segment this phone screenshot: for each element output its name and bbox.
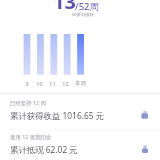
- staticText: 已参与微转: [72, 12, 94, 18]
- staticText: 本周: [75, 80, 86, 87]
- staticText: 使用 12 张抵扣金: [10, 133, 52, 140]
- staticText: 9: [25, 80, 29, 87]
- button[interactable]: 使用 12 张抵扣金: [0, 130, 160, 160]
- staticText: 累计抵现 62.02 元: [10, 144, 78, 155]
- staticText: 累计获得收益 1016.65 元: [10, 110, 105, 121]
- staticText: 10: [36, 80, 43, 87]
- button[interactable]: 已经坚持 12 周: [0, 96, 160, 126]
- staticText: 13: [53, 0, 76, 15]
- staticText: /52周: [75, 0, 100, 13]
- staticText: 11: [49, 80, 56, 87]
- other: 抵现详情: [141, 145, 149, 153]
- other: 收益详情: [141, 111, 149, 119]
- staticText: 12: [62, 80, 69, 87]
- staticText: 已经坚持 12 周: [10, 99, 46, 106]
